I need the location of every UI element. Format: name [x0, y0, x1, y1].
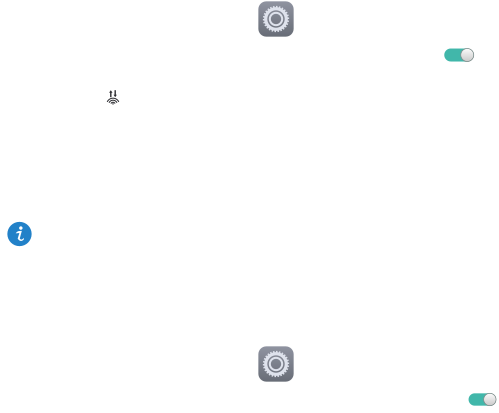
button[interactable]: Settings — [258, 1, 294, 37]
button[interactable]: Settings — [258, 346, 294, 382]
button[interactable]: Setting on — [469, 393, 496, 406]
button[interactable]: More information — [7, 222, 32, 246]
button[interactable]: Wi-Fi on — [444, 48, 474, 61]
